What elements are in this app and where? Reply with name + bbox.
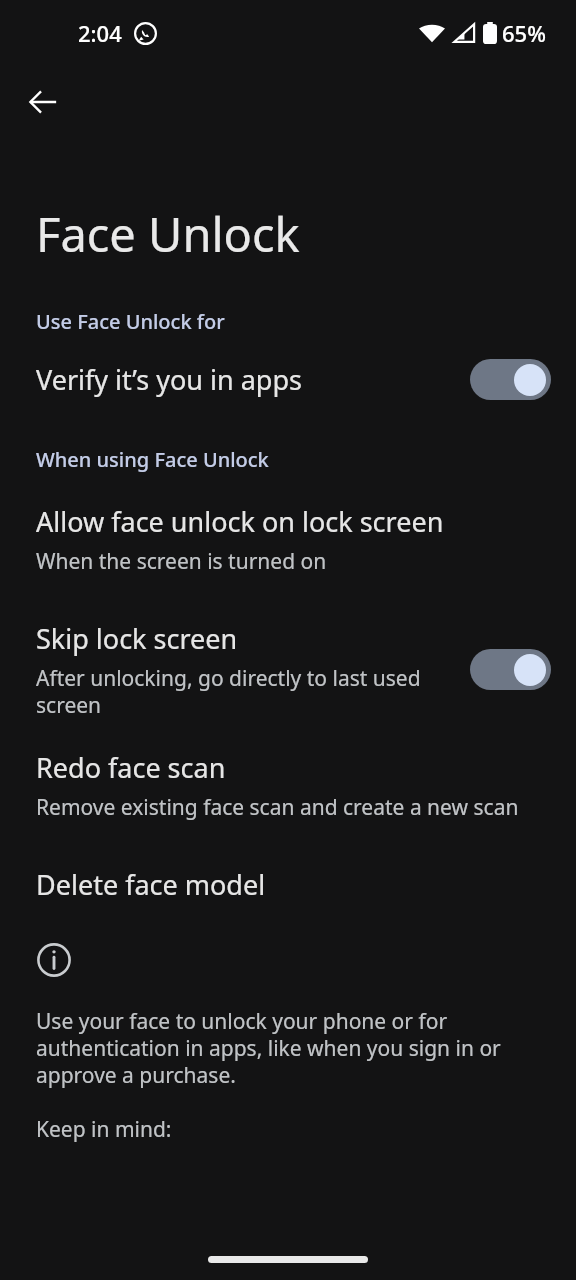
staticText: After unlocking, go directly to last use…: [36, 664, 436, 719]
staticText: Skip lock screen: [36, 620, 238, 657]
staticText: Keep in mind:: [36, 1115, 172, 1144]
staticText: Allow face unlock on lock screen: [36, 503, 444, 540]
staticText: Use your face to unlock your phone or fo…: [36, 1007, 510, 1089]
staticText: Face Unlock: [36, 202, 300, 266]
button[interactable]: Delete face model: [0, 866, 576, 903]
button[interactable]: Verify it’s you in apps: [0, 359, 576, 400]
button[interactable]: Allow face unlock on lock screen: [0, 503, 576, 576]
staticText: Remove existing face scan and create a n…: [36, 793, 519, 822]
staticText: Verify it’s you in apps: [36, 361, 302, 398]
button[interactable]: Skip lock screen: [0, 620, 576, 719]
button[interactable]: Toggle setting: [470, 359, 551, 400]
button[interactable]: Toggle setting: [470, 649, 551, 690]
staticText: Use Face Unlock for: [36, 308, 225, 335]
staticText: 65%: [502, 18, 546, 48]
staticText: Redo face scan: [36, 749, 226, 786]
staticText: 2:04: [78, 18, 122, 48]
staticText: When the screen is turned on: [36, 547, 327, 576]
staticText: When using Face Unlock: [36, 446, 269, 473]
staticText: Delete face model: [36, 866, 266, 903]
button[interactable]: Redo face scan: [0, 749, 576, 822]
button[interactable]: Back: [19, 78, 67, 126]
